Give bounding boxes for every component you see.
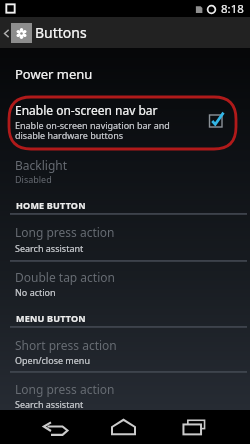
staticText: Long press action bbox=[15, 224, 115, 240]
staticText: Power menu bbox=[15, 65, 93, 83]
staticText: Short press action bbox=[15, 337, 117, 353]
staticText: 8:18 bbox=[221, 1, 244, 17]
staticText: Disabled bbox=[15, 173, 52, 185]
staticText: Double tap action bbox=[15, 269, 115, 285]
staticText: Enable on-screen navigation bar and bbox=[15, 119, 170, 131]
staticText: Search assistant bbox=[15, 398, 84, 410]
button[interactable]: Recent apps bbox=[172, 410, 216, 444]
button[interactable]: Toggle on-screen nav bar bbox=[206, 110, 225, 129]
button[interactable] bbox=[0, 212, 250, 259]
staticText: No action bbox=[15, 286, 56, 298]
staticText: Open/close menu bbox=[15, 354, 90, 366]
button[interactable] bbox=[0, 326, 250, 371]
button[interactable]: Navigate up bbox=[0, 23, 32, 43]
button[interactable] bbox=[0, 261, 250, 305]
staticText: MENU BUTTON bbox=[16, 312, 86, 324]
button[interactable] bbox=[0, 373, 250, 409]
button[interactable]: Home bbox=[101, 410, 145, 444]
button[interactable] bbox=[0, 152, 250, 188]
button[interactable]: Back bbox=[33, 412, 77, 444]
staticText: Search assistant bbox=[15, 242, 84, 254]
staticText: Enable on-screen nav bar bbox=[15, 102, 158, 118]
staticText: HOME BUTTON bbox=[16, 199, 86, 211]
staticText: Buttons bbox=[35, 23, 87, 42]
button[interactable] bbox=[0, 60, 250, 82]
staticText: Backlight bbox=[15, 157, 68, 173]
staticText: Long press action bbox=[15, 381, 115, 397]
staticText: disable hardware buttons bbox=[15, 129, 124, 141]
button[interactable] bbox=[0, 95, 250, 151]
